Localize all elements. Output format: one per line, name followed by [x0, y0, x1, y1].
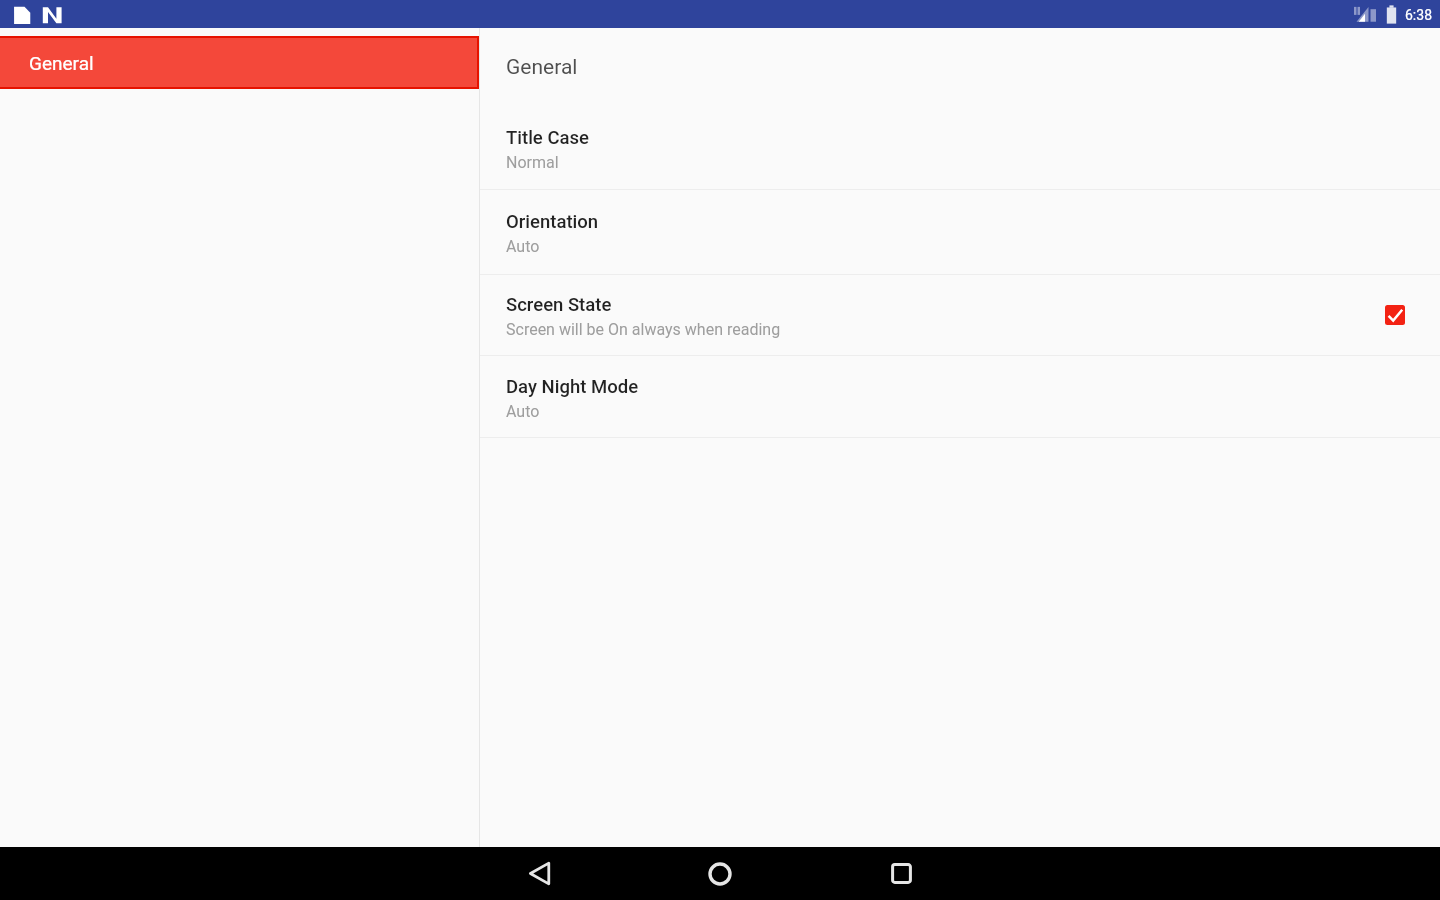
staticText: General [506, 55, 578, 80]
button[interactable]: Orientation [480, 190, 1440, 274]
staticText: 6:38 [1405, 7, 1432, 23]
button[interactable]: Title Case [480, 106, 1440, 189]
staticText: Screen will be On always when reading [506, 320, 781, 339]
staticText: Orientation [506, 211, 599, 233]
staticText: Normal [506, 153, 559, 172]
button[interactable]: Screen State checkbox [1382, 302, 1408, 328]
button[interactable]: Home [690, 847, 750, 900]
staticText: General [29, 52, 94, 74]
staticText: Auto [506, 402, 540, 421]
button[interactable]: Day Night Mode [480, 356, 1440, 437]
button[interactable]: General [0, 36, 479, 89]
staticText: Title Case [506, 127, 589, 149]
staticText: Auto [506, 237, 540, 256]
button[interactable]: Recent apps [871, 847, 931, 900]
button[interactable]: Screen State [480, 275, 1440, 355]
button[interactable]: Back [510, 847, 570, 900]
staticText: Day Night Mode [506, 376, 639, 398]
staticText: Screen State [506, 294, 612, 316]
